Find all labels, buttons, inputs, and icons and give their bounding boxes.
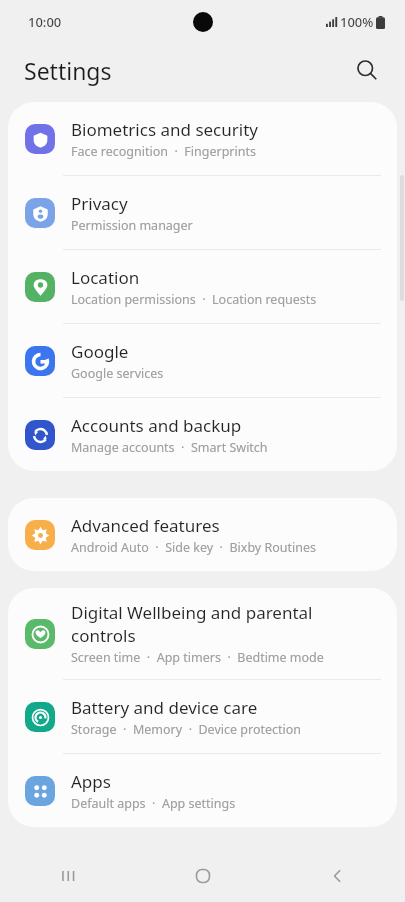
staticText: 100% (340, 13, 374, 31)
staticText: Accounts and backup (71, 414, 242, 437)
button[interactable]: Accounts and backup (8, 398, 397, 471)
button[interactable]: Digital Wellbeing and parental controls (8, 588, 397, 679)
staticText: Advanced features (71, 514, 220, 537)
staticText: 10:00 (28, 13, 62, 31)
button[interactable]: Recents (0, 850, 135, 902)
staticText: Face recognition · Fingerprints (71, 143, 256, 160)
staticText: Manage accounts · Smart Switch (71, 439, 268, 456)
staticText: Default apps · App settings (71, 795, 236, 812)
staticText: Privacy (71, 192, 128, 215)
button[interactable]: Search (347, 50, 387, 90)
button[interactable]: Google (8, 324, 397, 397)
staticText: Google services (71, 365, 164, 382)
staticText: Biometrics and security (71, 118, 258, 141)
staticText: Storage · Memory · Device protection (71, 721, 302, 738)
button[interactable]: Battery and device care (8, 680, 397, 753)
staticText: Screen time · App timers · Bedtime mode (71, 649, 324, 666)
staticText: Digital Wellbeing and parental controls (71, 601, 381, 647)
button[interactable]: Advanced features (8, 498, 397, 571)
button[interactable]: Location (8, 250, 397, 323)
staticText: Apps (71, 770, 111, 793)
button[interactable]: Apps (8, 754, 397, 827)
button[interactable]: Privacy (8, 176, 397, 249)
staticText: Location (71, 266, 140, 289)
staticText: Permission manager (71, 217, 193, 234)
staticText: Google (71, 340, 129, 363)
staticText: Android Auto · Side key · Bixby Routines (71, 539, 317, 556)
button[interactable]: Back (270, 850, 405, 902)
button[interactable]: Biometrics and security (8, 102, 397, 175)
button[interactable]: Home (135, 850, 270, 902)
staticText: Battery and device care (71, 696, 258, 719)
staticText: Settings (24, 55, 112, 86)
staticText: Location permissions · Location requests (71, 291, 317, 308)
